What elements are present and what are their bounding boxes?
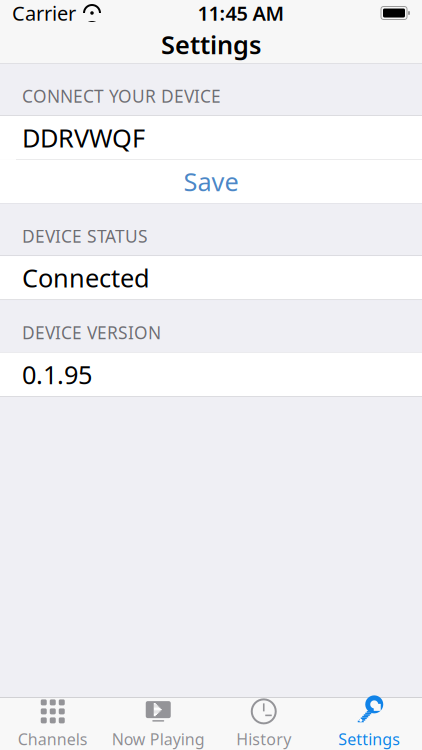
- staticText: DEVICE VERSION: [22, 321, 161, 344]
- staticText: 0.1.95: [22, 357, 92, 391]
- button[interactable]: Settings: [316, 698, 422, 750]
- button[interactable]: History: [211, 698, 316, 750]
- button[interactable]: Channels: [0, 698, 105, 750]
- staticText: Connected: [22, 261, 150, 295]
- button[interactable]: Save: [0, 160, 422, 203]
- staticText: Save: [183, 165, 238, 198]
- staticText: CONNECT YOUR DEVICE: [22, 84, 221, 107]
- staticText: Now Playing: [112, 728, 205, 750]
- staticText: Settings: [161, 28, 261, 61]
- button[interactable]: Now Playing: [105, 698, 211, 750]
- staticText: 11:45 AM: [197, 0, 284, 26]
- staticText: DDRVWQF: [22, 121, 145, 154]
- staticText: Carrier: [12, 0, 76, 26]
- staticText: Settings: [338, 728, 400, 750]
- staticText: Channels: [18, 728, 88, 750]
- staticText: History: [236, 728, 291, 750]
- staticText: DEVICE STATUS: [22, 224, 148, 247]
